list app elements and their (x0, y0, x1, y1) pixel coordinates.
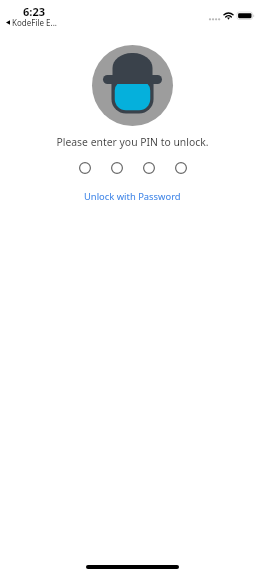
staticText: Please enter you PIN to unlock. (56, 135, 209, 149)
button[interactable]: KodeFile E... (6, 17, 57, 28)
button[interactable]: Unlock with Password (76, 187, 189, 206)
staticText: KodeFile E... (12, 17, 57, 28)
staticText: 6:23 (23, 4, 45, 19)
staticText: Unlock with Password (84, 190, 181, 203)
